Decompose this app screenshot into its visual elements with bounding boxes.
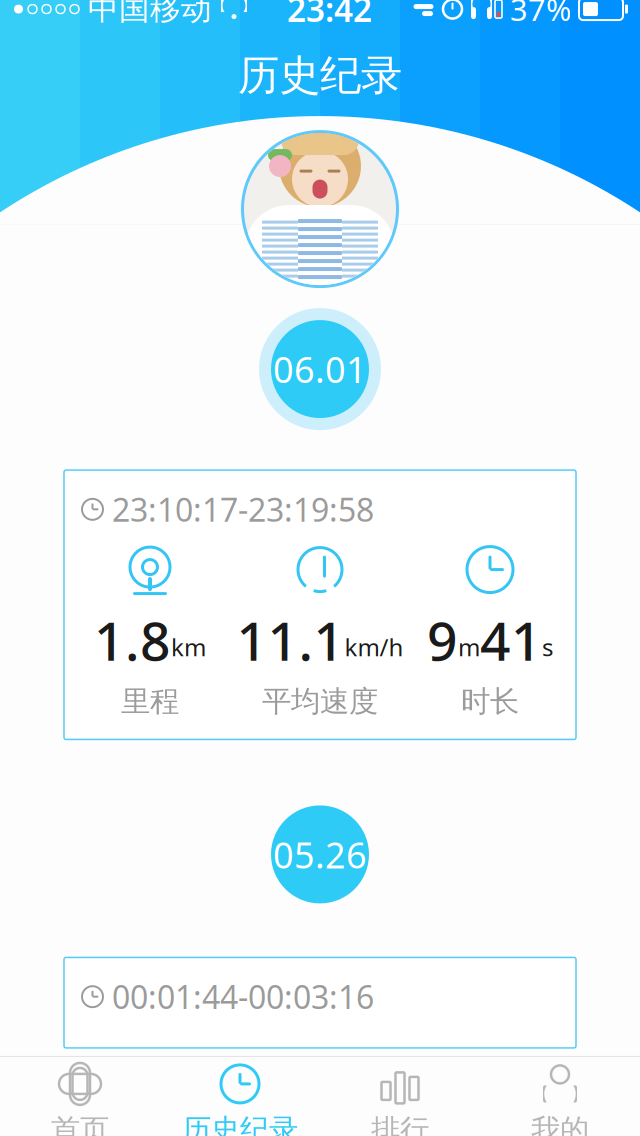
staticText: 时长 bbox=[461, 683, 519, 719]
staticText: s bbox=[542, 631, 553, 663]
button[interactable]: 排行 bbox=[320, 1057, 480, 1136]
staticText: 23:10:17-23:19:58 bbox=[112, 488, 374, 531]
staticText: km/h bbox=[344, 631, 403, 663]
staticText: 37% bbox=[510, 0, 571, 29]
staticText: 排行 bbox=[371, 1112, 429, 1136]
staticText: 中国移动 bbox=[88, 0, 212, 28]
button[interactable]: 23:10:17-23:19:58 bbox=[64, 470, 576, 739]
staticText: 11.1 bbox=[236, 605, 344, 675]
staticText: 首页 bbox=[51, 1112, 109, 1136]
staticText: 00:01:44-00:03:16 bbox=[112, 975, 374, 1018]
staticText: 1.8 bbox=[94, 605, 171, 675]
staticText: 05.26 bbox=[273, 830, 367, 878]
staticText: 06.01 bbox=[273, 345, 367, 393]
staticText: 41 bbox=[480, 605, 542, 675]
button[interactable]: 首页 bbox=[0, 1057, 160, 1136]
staticText: 历史纪录 bbox=[182, 1112, 298, 1136]
staticText: 我的 bbox=[531, 1112, 589, 1136]
staticText: 9 bbox=[427, 605, 458, 675]
staticText: 平均速度 bbox=[262, 683, 378, 719]
staticText: 23:42 bbox=[287, 0, 372, 31]
button[interactable]: 00:01:44-00:03:16 bbox=[64, 957, 576, 1048]
staticText: m bbox=[458, 631, 480, 663]
staticText: 里程 bbox=[121, 683, 179, 719]
button[interactable]: 历史纪录 bbox=[160, 1057, 320, 1136]
staticText: km bbox=[171, 631, 206, 663]
staticText: 历史纪录 bbox=[238, 50, 402, 101]
button[interactable]: 我的 bbox=[480, 1057, 640, 1136]
